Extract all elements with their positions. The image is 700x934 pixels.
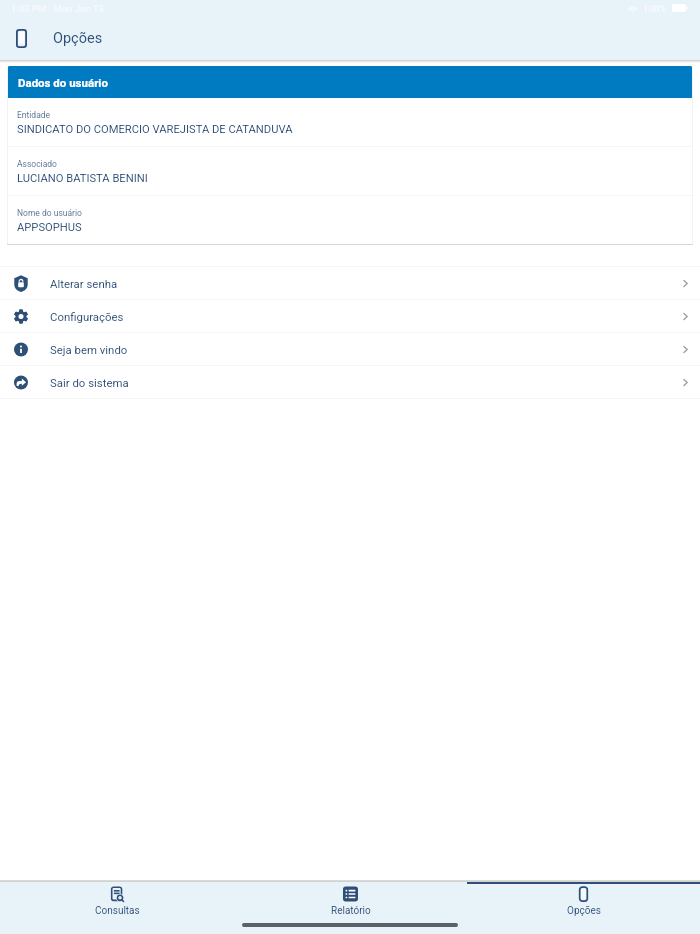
button[interactable]: Consultas: [0, 882, 234, 934]
button[interactable]: Opções: [467, 882, 700, 934]
staticText: Configurações: [50, 310, 124, 323]
staticText: Sair do sistema: [50, 376, 129, 389]
staticText: Relatório: [331, 905, 371, 917]
button[interactable]: Alterar senha: [0, 267, 700, 299]
staticText: Opções: [567, 905, 601, 917]
button[interactable]: Device: [16, 29, 27, 48]
button[interactable]: Seja bem vindo: [0, 333, 700, 365]
staticText: Opções: [53, 30, 103, 47]
button[interactable]: Configurações: [0, 300, 700, 332]
staticText: SINDICATO DO COMERCIO VAREJISTA DE CATAN…: [17, 123, 293, 136]
staticText: Entidade: [17, 110, 51, 120]
button[interactable]: Sair do sistema: [0, 366, 700, 398]
staticText: Nome do usuário: [17, 208, 82, 218]
staticText: Associado: [17, 159, 57, 169]
staticText: Dados do usuário: [18, 76, 108, 89]
staticText: Consultas: [95, 905, 140, 917]
staticText: APPSOPHUS: [17, 221, 82, 234]
staticText: Seja bem vindo: [50, 343, 128, 356]
staticText: Alterar senha: [50, 277, 118, 290]
button[interactable]: Relatório: [234, 882, 467, 934]
staticText: LUCIANO BATISTA BENINI: [17, 172, 148, 185]
staticText: 1:43 PM Mon Jun 13: [11, 3, 104, 14]
staticText: 100%: [643, 3, 667, 14]
